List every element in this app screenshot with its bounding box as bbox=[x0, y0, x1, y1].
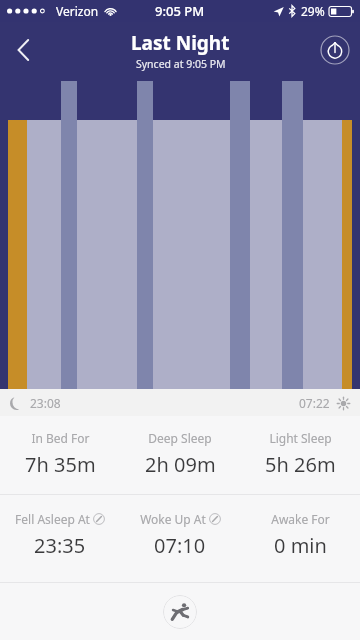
button[interactable]: Share bbox=[320, 35, 350, 65]
staticText: 07:22 bbox=[299, 395, 330, 411]
staticText: 9:05 PM bbox=[155, 2, 205, 20]
staticText: Last Night bbox=[131, 30, 230, 56]
button[interactable]: Deep Sleep bbox=[120, 430, 240, 478]
staticText: 23:35 bbox=[34, 532, 86, 559]
button[interactable]: In Bed For bbox=[0, 430, 120, 478]
staticText: 29% bbox=[301, 3, 325, 19]
button[interactable]: Light Sleep bbox=[240, 430, 360, 478]
staticText: Awake For bbox=[271, 511, 330, 527]
staticText: Synced at 9:05 PM bbox=[136, 57, 226, 71]
staticText: 5h 26m bbox=[265, 451, 336, 478]
staticText: Verizon bbox=[56, 3, 99, 19]
button[interactable]: Awake For bbox=[240, 511, 360, 559]
staticText: Light Sleep bbox=[269, 430, 332, 446]
staticText: Fell Asleep At bbox=[15, 511, 90, 527]
staticText: 0 min bbox=[274, 532, 327, 559]
button[interactable]: Fell Asleep At bbox=[0, 511, 120, 559]
staticText: Woke Up At bbox=[140, 511, 206, 527]
button[interactable]: Activity bbox=[163, 595, 197, 629]
staticText: 23:08 bbox=[30, 395, 61, 411]
button[interactable]: Back bbox=[0, 27, 46, 73]
staticText: 7h 35m bbox=[25, 451, 96, 478]
button[interactable]: Woke Up At bbox=[120, 511, 240, 559]
staticText: 2h 09m bbox=[145, 451, 216, 478]
staticText: 07:10 bbox=[154, 532, 206, 559]
staticText: In Bed For bbox=[31, 430, 90, 446]
staticText: Deep Sleep bbox=[148, 430, 212, 446]
